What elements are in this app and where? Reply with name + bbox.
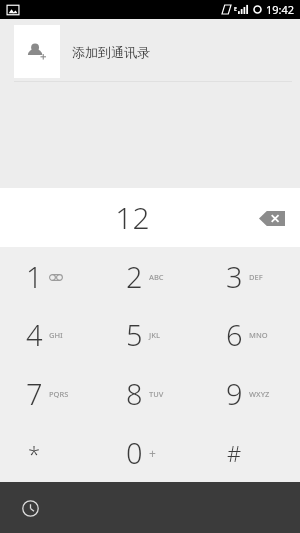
staticText: 6	[226, 315, 243, 354]
button[interactable]: #	[200, 423, 300, 482]
button[interactable]: Backspace	[252, 201, 292, 235]
staticText: PQRS	[49, 389, 69, 399]
staticText: MNO	[249, 330, 268, 340]
staticText: DEF	[249, 272, 263, 282]
button[interactable]: 4	[0, 305, 100, 364]
staticText: ABC	[149, 272, 164, 282]
staticText: 3	[226, 257, 243, 296]
button[interactable]: 5	[100, 305, 200, 364]
staticText: #	[227, 438, 242, 468]
staticText: 2	[126, 257, 143, 296]
staticText: JKL	[149, 330, 160, 340]
button[interactable]: 3	[200, 247, 300, 305]
staticText: 12	[115, 197, 150, 238]
button[interactable]: 2	[100, 247, 200, 305]
staticText: WXYZ	[249, 389, 270, 399]
button[interactable]: 8	[100, 364, 200, 423]
staticText: E	[234, 6, 237, 13]
staticText: 4	[26, 315, 43, 354]
staticText: 8	[126, 374, 143, 413]
staticText: 9	[226, 374, 243, 413]
button[interactable]: *	[0, 423, 100, 482]
button[interactable]: 0	[100, 423, 200, 482]
staticText: 0	[126, 433, 143, 472]
staticText: *	[28, 438, 41, 468]
staticText: 5	[126, 315, 143, 354]
staticText: +	[149, 445, 156, 461]
staticText: 7	[26, 374, 43, 413]
button[interactable]: 1	[0, 247, 100, 305]
staticText: 1	[26, 257, 43, 296]
button[interactable]: 9	[200, 364, 300, 423]
staticText: GHI	[49, 330, 63, 340]
button[interactable]: Call history	[10, 488, 50, 528]
button[interactable]: 添加到通讯录	[14, 25, 300, 78]
button[interactable]: 7	[0, 364, 100, 423]
button[interactable]: 6	[200, 305, 300, 364]
staticText: 添加到通讯录	[72, 44, 150, 60]
staticText: 19:42	[266, 2, 295, 17]
staticText: TUV	[149, 389, 164, 399]
